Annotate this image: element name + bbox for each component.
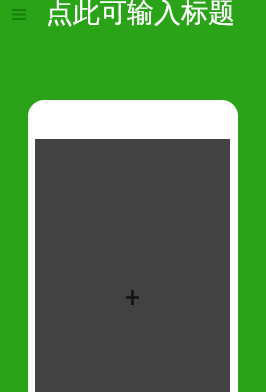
button[interactable]: 点此可输入标题 [46, 0, 235, 30]
button[interactable]: Open navigation menu [0, 0, 37, 28]
